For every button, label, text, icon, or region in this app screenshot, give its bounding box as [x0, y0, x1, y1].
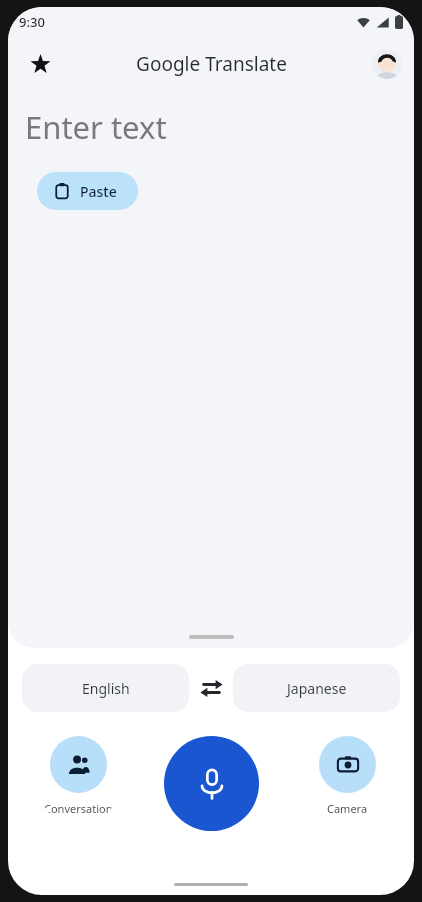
- staticText: Japanese: [287, 679, 347, 698]
- button[interactable]: Account: [372, 49, 402, 79]
- button[interactable]: Saved: [20, 44, 60, 84]
- button[interactable]: Japanese: [233, 664, 400, 712]
- staticText: English: [82, 679, 130, 698]
- button[interactable]: Swap languages: [189, 666, 233, 710]
- staticText: 9:30: [19, 13, 45, 31]
- button[interactable]: Conversation: [44, 736, 113, 816]
- button[interactable]: Speak: [164, 736, 259, 831]
- button[interactable]: English: [22, 664, 189, 712]
- button[interactable]: Camera: [319, 736, 376, 816]
- staticText: Paste: [80, 182, 117, 201]
- button[interactable]: Paste: [37, 172, 138, 210]
- staticText: Camera: [327, 801, 368, 816]
- staticText: Google Translate: [136, 51, 287, 77]
- staticText: Conversation: [44, 801, 113, 816]
- staticText: Enter text: [25, 106, 167, 148]
